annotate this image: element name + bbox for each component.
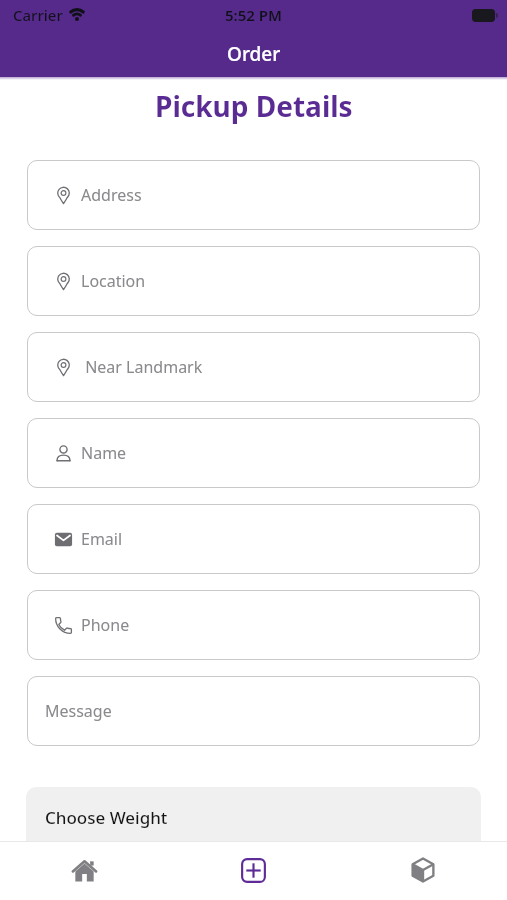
button[interactable]: Name (27, 418, 480, 488)
staticText: Pickup Details (155, 87, 353, 125)
button[interactable] (0, 842, 169, 898)
button[interactable] (169, 842, 338, 898)
button[interactable]: Email (27, 504, 480, 574)
button[interactable]: Near Landmark (27, 332, 480, 402)
staticText: Near Landmark (81, 356, 203, 378)
button[interactable]: Message (27, 676, 480, 746)
staticText: 5:52 PM (225, 5, 282, 25)
staticText: Choose Weight (45, 806, 168, 829)
staticText: Email (81, 528, 123, 550)
button[interactable]: Choose Weight (26, 787, 481, 841)
staticText: Location (81, 270, 146, 292)
staticText: Phone (81, 614, 130, 636)
button[interactable]: Address (27, 160, 480, 230)
staticText: Name (81, 442, 127, 464)
button[interactable] (338, 842, 507, 898)
staticText: Message (45, 700, 112, 722)
staticText: Address (81, 184, 142, 206)
staticText: Carrier (13, 5, 63, 25)
button[interactable]: Phone (27, 590, 480, 660)
staticText: Order (227, 41, 281, 67)
button[interactable]: Location (27, 246, 480, 316)
